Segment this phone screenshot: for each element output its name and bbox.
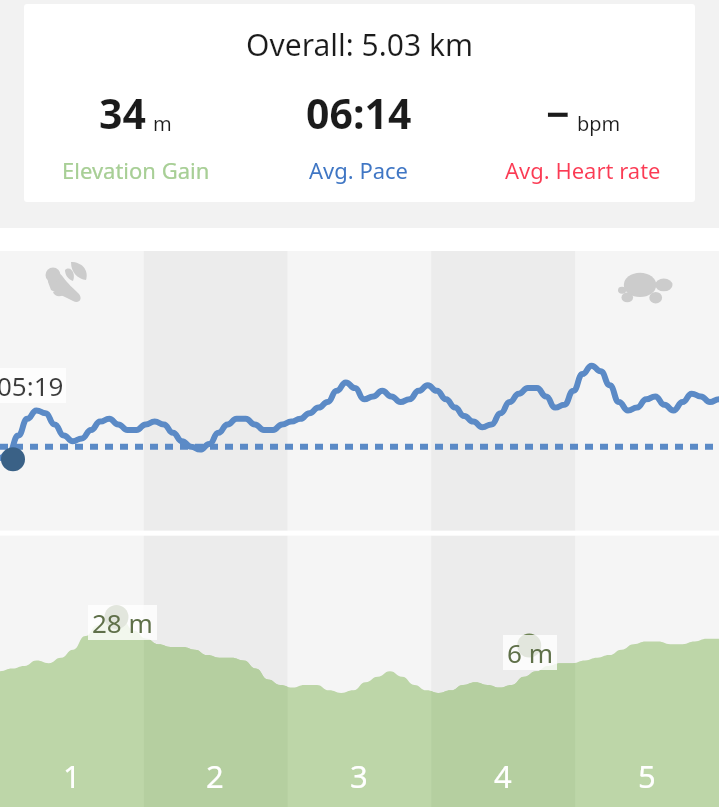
other: Fastest pace <box>42 257 92 307</box>
staticText: 34 <box>99 85 146 141</box>
staticText: − <box>546 85 570 141</box>
staticText: Elevation Gain <box>62 155 210 185</box>
button[interactable]: Fastest pace <box>0 251 719 807</box>
staticText: Overall: 5.03 km <box>24 24 695 65</box>
staticText: 4 <box>494 755 512 797</box>
staticText: 3 <box>350 755 368 797</box>
staticText: 06:14 <box>306 85 412 141</box>
staticText: 6 m <box>507 635 553 670</box>
staticText: m <box>153 110 172 137</box>
staticText: Avg. Pace <box>309 155 409 185</box>
staticText: 28 m <box>92 605 153 640</box>
staticText: 05:19 <box>0 368 64 403</box>
staticText: bpm <box>577 110 621 137</box>
staticText: 2 <box>206 755 224 797</box>
button[interactable]: 06:14 <box>247 85 471 185</box>
button[interactable]: − <box>471 85 695 185</box>
button[interactable]: 34 <box>24 85 247 185</box>
button[interactable]: Overall: 5.03 km <box>24 4 695 202</box>
other: Slowest pace <box>618 260 676 318</box>
staticText: Avg. Heart rate <box>505 155 661 185</box>
staticText: 5 <box>638 755 656 797</box>
staticText: 1 <box>63 755 81 797</box>
